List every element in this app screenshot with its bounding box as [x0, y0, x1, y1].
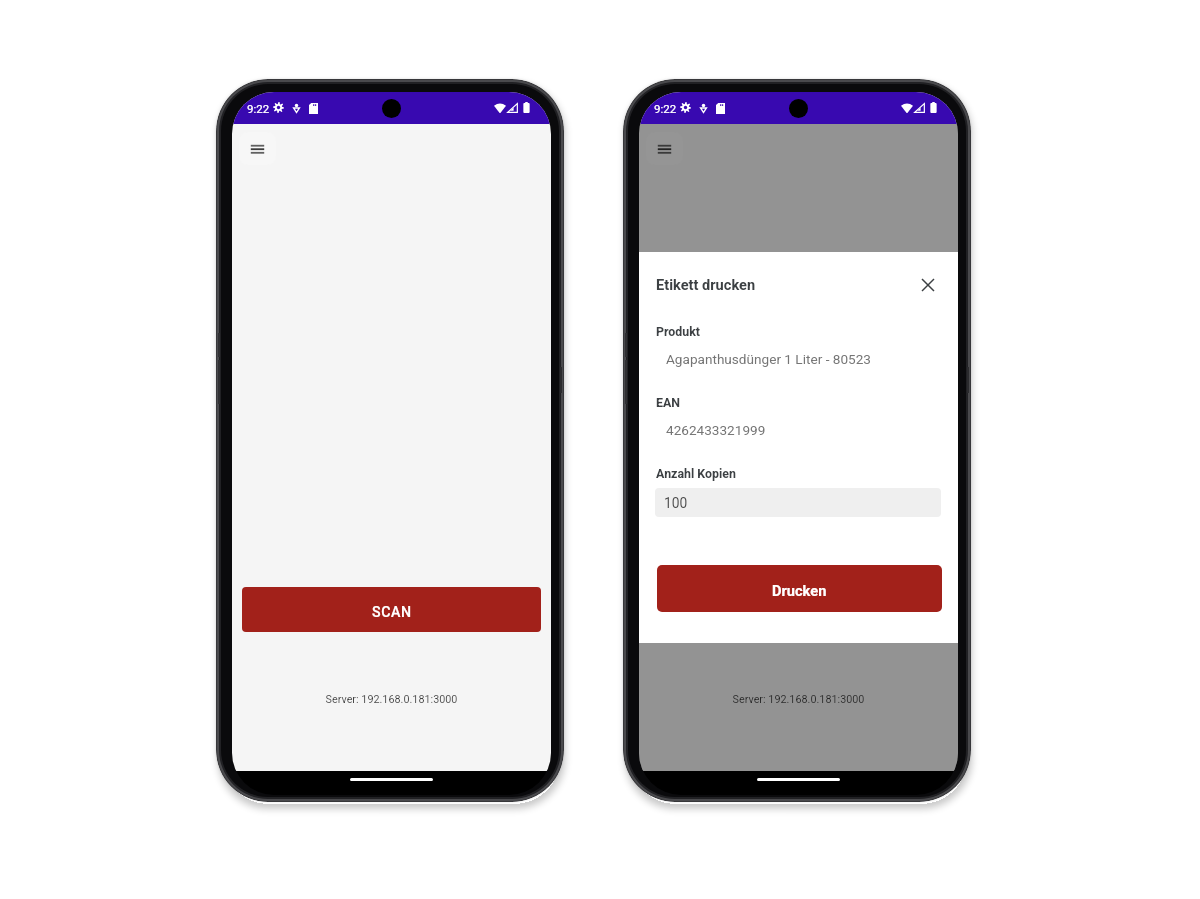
staticText: Agapanthusdünger 1 Liter - 80523	[666, 351, 871, 367]
staticText: EAN	[656, 395, 681, 410]
button[interactable]: SCAN	[649, 587, 948, 632]
staticText: Etikett drucken	[656, 276, 756, 293]
staticText: 9:22	[654, 102, 677, 115]
staticText: Anzahl Kopien	[656, 466, 736, 481]
button[interactable]: Menu	[646, 132, 683, 165]
button[interactable]: 100	[655, 488, 941, 517]
staticText: Produkt	[656, 324, 701, 339]
staticText: SCAN	[779, 604, 819, 621]
button[interactable]: Menu	[239, 132, 276, 165]
staticText: 4262433321999	[666, 422, 766, 438]
button[interactable]: Drucken	[657, 565, 942, 612]
staticText: 9:22	[247, 102, 270, 115]
staticText: SCAN	[372, 604, 412, 621]
staticText: Server: 192.168.0.181:3000	[639, 693, 958, 706]
staticText: 100	[664, 495, 688, 511]
staticText: Drucken	[772, 582, 827, 599]
button[interactable]: SCAN	[242, 587, 541, 632]
staticText: Server: 192.168.0.181:3000	[232, 693, 551, 706]
button[interactable]: Close	[916, 273, 940, 297]
